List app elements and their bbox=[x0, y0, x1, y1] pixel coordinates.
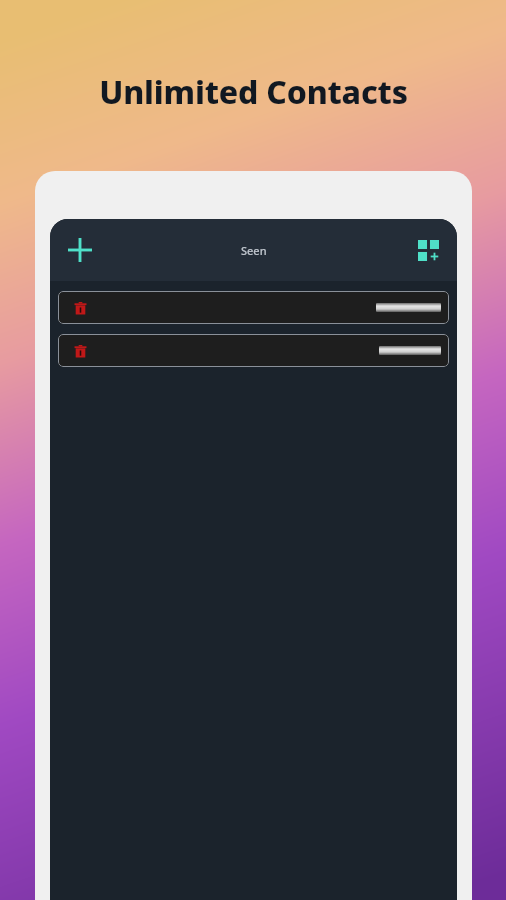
button[interactable]: Add group bbox=[407, 229, 449, 271]
button[interactable]: Delete bbox=[69, 297, 91, 319]
button[interactable]: Add contact bbox=[58, 228, 102, 272]
button[interactable]: Delete bbox=[69, 340, 91, 362]
staticText: Seen bbox=[241, 243, 267, 258]
staticText: Unlimited Contacts bbox=[99, 70, 408, 114]
button[interactable]: Delete bbox=[58, 291, 449, 324]
button[interactable]: Delete bbox=[58, 334, 449, 367]
